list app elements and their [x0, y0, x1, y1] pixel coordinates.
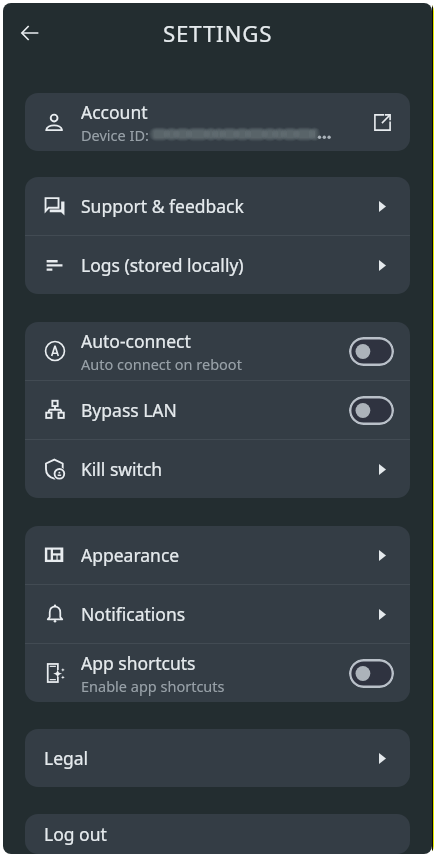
- button[interactable]: Toggle: [349, 337, 394, 366]
- staticText: Account: [81, 100, 148, 124]
- button[interactable]: Toggle: [349, 659, 394, 688]
- staticText: Auto-connect: [81, 329, 191, 353]
- staticText: Device ID:: [81, 125, 153, 145]
- staticText: Kill switch: [81, 457, 163, 481]
- staticText: Appearance: [81, 543, 180, 567]
- staticText: Support & feedback: [81, 194, 244, 218]
- staticText: Enable app shortcuts: [81, 676, 225, 696]
- button[interactable]: Support & feedback: [25, 177, 410, 235]
- staticText: Notifications: [81, 602, 186, 626]
- staticText: Logs (stored locally): [81, 253, 244, 277]
- button[interactable]: Bypass LAN: [25, 381, 410, 439]
- button[interactable]: Legal: [25, 729, 410, 787]
- button[interactable]: Account: [25, 93, 410, 151]
- button[interactable]: Back: [6, 9, 54, 57]
- button[interactable]: Appearance: [25, 526, 410, 584]
- button[interactable]: Toggle: [349, 396, 394, 425]
- staticText: Auto connect on reboot: [81, 354, 242, 374]
- button[interactable]: Auto-connect: [25, 322, 410, 380]
- button[interactable]: Kill switch: [25, 440, 410, 498]
- staticText: SETTINGS: [163, 18, 273, 48]
- staticText: Log out: [44, 822, 107, 846]
- staticText: Legal: [44, 746, 89, 770]
- button[interactable]: Notifications: [25, 585, 410, 643]
- button[interactable]: Log out: [25, 814, 410, 854]
- staticText: App shortcuts: [81, 651, 196, 675]
- button[interactable]: Open account: [373, 107, 394, 137]
- button[interactable]: Logs (stored locally): [25, 236, 410, 294]
- staticText: Bypass LAN: [81, 398, 177, 422]
- button[interactable]: App shortcuts: [25, 644, 410, 702]
